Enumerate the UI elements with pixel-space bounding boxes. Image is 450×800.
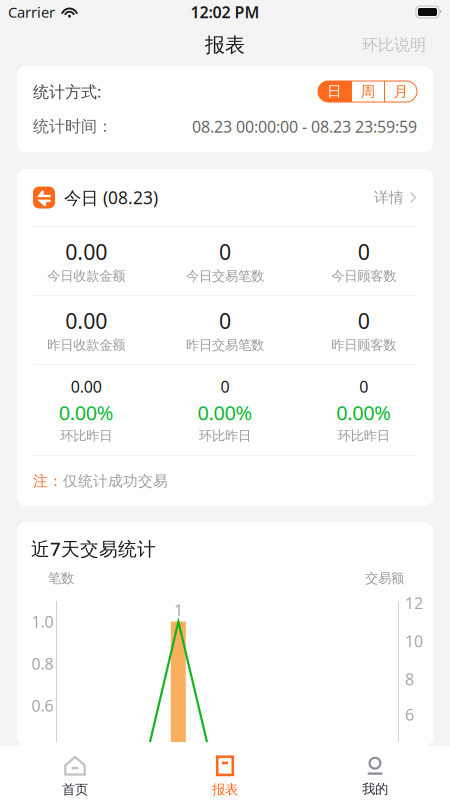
button[interactable]: 日 bbox=[318, 81, 351, 102]
staticText: 昨日交易笔数 bbox=[186, 337, 264, 353]
staticText: 0 bbox=[219, 238, 231, 266]
button[interactable]: 月 bbox=[385, 81, 417, 102]
staticText: 0.00 bbox=[65, 307, 107, 335]
staticText: 今日收款金额 bbox=[47, 268, 125, 284]
staticText: 环比昨日 bbox=[60, 428, 112, 444]
staticText: 12:02 PM bbox=[190, 1, 259, 23]
staticText: 08.23 00:00:00 - 08.23 23:59:59 bbox=[192, 116, 417, 137]
staticText: 环比昨日 bbox=[199, 428, 251, 444]
staticText: 环比说明 bbox=[362, 35, 426, 55]
staticText: 今日 (08.23) bbox=[64, 186, 158, 209]
staticText: 0 bbox=[358, 238, 370, 266]
staticText: 环比昨日 bbox=[338, 428, 390, 444]
staticText: 统计时间： bbox=[33, 117, 113, 136]
staticText: 我的 bbox=[362, 781, 388, 797]
staticText: 0 bbox=[358, 307, 370, 335]
staticText: 笔数 bbox=[48, 570, 74, 586]
staticText: 近7天交易统计 bbox=[31, 536, 156, 561]
staticText: 0 bbox=[219, 307, 231, 335]
staticText: 月 bbox=[393, 82, 408, 100]
staticText: 12 bbox=[405, 592, 423, 614]
staticText: 今日顾客数 bbox=[331, 268, 396, 284]
staticText: 统计方式: bbox=[33, 81, 101, 102]
staticText: 1 bbox=[174, 599, 183, 621]
staticText: 首页 bbox=[62, 781, 88, 798]
staticText: 注： bbox=[33, 472, 63, 490]
button[interactable]: 我的 bbox=[300, 745, 450, 800]
staticText: 昨日收款金额 bbox=[47, 337, 125, 353]
staticText: 1.0 bbox=[31, 611, 53, 632]
staticText: 10 bbox=[405, 630, 423, 652]
staticText: 昨日顾客数 bbox=[331, 337, 396, 353]
staticText: 8 bbox=[405, 668, 414, 690]
button[interactable]: 周 bbox=[352, 81, 384, 102]
staticText: 0 bbox=[359, 376, 368, 397]
staticText: 0.00% bbox=[336, 399, 391, 426]
button[interactable]: 详情 bbox=[374, 182, 417, 212]
staticText: 0.6 bbox=[31, 695, 53, 716]
button[interactable]: 报表 bbox=[150, 744, 300, 800]
staticText: 报表 bbox=[205, 33, 245, 57]
staticText: 交易额 bbox=[365, 570, 404, 586]
staticText: 0.00 bbox=[71, 376, 102, 397]
staticText: 0.8 bbox=[31, 653, 53, 674]
staticText: 详情 bbox=[374, 188, 404, 206]
staticText: 仅统计成功交易 bbox=[63, 472, 168, 490]
staticText: 今日交易笔数 bbox=[186, 268, 264, 284]
staticText: 0.00 bbox=[65, 238, 107, 266]
staticText: Carrier bbox=[8, 2, 55, 22]
staticText: 0 bbox=[220, 376, 229, 397]
staticText: 报表 bbox=[212, 781, 238, 798]
staticText: 6 bbox=[405, 704, 414, 725]
staticText: 0.00% bbox=[59, 399, 114, 426]
staticText: 周 bbox=[360, 82, 375, 100]
staticText: 日 bbox=[327, 82, 342, 100]
button[interactable]: 环比说明 bbox=[356, 29, 432, 61]
staticText: 0.00% bbox=[197, 399, 252, 426]
button[interactable]: 首页 bbox=[0, 744, 150, 800]
